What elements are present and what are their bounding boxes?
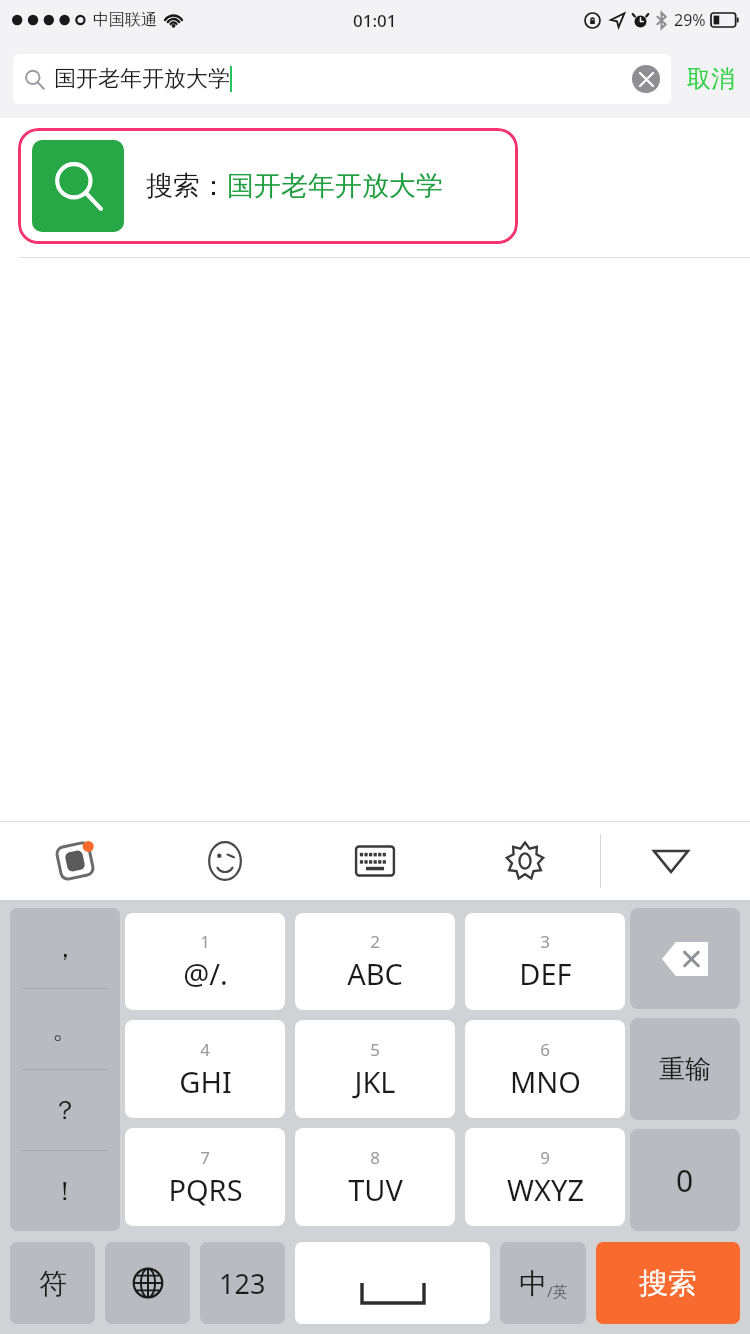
staticText: JKL xyxy=(354,1062,396,1101)
staticText: 取消 xyxy=(687,64,735,94)
button[interactable]: Switch language xyxy=(105,1242,190,1324)
staticText: PQRS xyxy=(168,1170,243,1209)
staticText: 搜索 xyxy=(639,1265,697,1302)
staticText: /英 xyxy=(547,1281,568,1301)
staticText: GHI xyxy=(179,1062,232,1101)
button[interactable]: 7 xyxy=(125,1128,285,1226)
staticText: 国开老年开放大学 xyxy=(54,65,230,93)
button[interactable]: Settings xyxy=(450,822,600,900)
staticText: 符 xyxy=(39,1266,67,1301)
button[interactable]: Clear text xyxy=(632,65,660,93)
button[interactable]: Backspace xyxy=(630,908,740,1009)
button[interactable]: 9 xyxy=(465,1128,625,1226)
staticText: 7 xyxy=(200,1146,210,1169)
staticText: TUV xyxy=(348,1170,403,1209)
button[interactable]: Emoji xyxy=(150,822,300,900)
staticText: 国开老年开放大学 xyxy=(227,169,443,203)
staticText: ， xyxy=(52,932,78,965)
staticText: 中国联通 xyxy=(93,10,157,30)
button[interactable]: 4 xyxy=(125,1020,285,1118)
staticText: @/. xyxy=(183,954,228,993)
button[interactable]: 中 xyxy=(500,1242,586,1324)
button[interactable]: 搜索 xyxy=(596,1242,740,1324)
button[interactable]: 0 xyxy=(630,1129,740,1231)
staticText: WXYZ xyxy=(507,1170,584,1209)
staticText: 01:01 xyxy=(353,9,397,32)
staticText: 。 xyxy=(52,1013,78,1046)
staticText: 29% xyxy=(674,9,706,31)
button[interactable]: 搜索： xyxy=(18,128,518,244)
staticText: 123 xyxy=(219,1265,266,1302)
staticText: 9 xyxy=(540,1146,550,1169)
button[interactable]: 1 xyxy=(125,913,285,1010)
button[interactable]: 123 xyxy=(200,1242,285,1324)
button[interactable]: Hide keyboard xyxy=(644,834,698,888)
staticText: 6 xyxy=(540,1038,550,1061)
button[interactable]: 3 xyxy=(465,913,625,1010)
button[interactable]: 。 xyxy=(10,989,120,1069)
staticText: ？ xyxy=(52,1094,78,1127)
button[interactable]: ？ xyxy=(10,1070,120,1150)
staticText: 1 xyxy=(200,930,210,953)
staticText: 3 xyxy=(540,930,550,953)
staticText: DEF xyxy=(519,954,572,993)
staticText: 4 xyxy=(200,1038,210,1061)
button[interactable]: Space xyxy=(295,1242,490,1324)
button[interactable]: 6 xyxy=(465,1020,625,1118)
staticText: 0 xyxy=(676,1160,694,1201)
button[interactable]: 符 xyxy=(10,1242,95,1324)
staticText: 搜索： xyxy=(146,169,227,203)
staticText: 重输 xyxy=(659,1053,711,1086)
staticText: ABC xyxy=(347,954,403,993)
staticText: ！ xyxy=(52,1175,78,1208)
button[interactable]: 5 xyxy=(295,1020,455,1118)
staticText: 2 xyxy=(370,930,380,953)
button[interactable]: ！ xyxy=(10,1151,120,1231)
staticText: MNO xyxy=(510,1062,581,1101)
staticText: 中 xyxy=(519,1266,547,1301)
button[interactable]: 取消 xyxy=(685,58,737,100)
staticText: 5 xyxy=(370,1038,380,1061)
button[interactable]: 2 xyxy=(295,913,455,1010)
staticText: 8 xyxy=(370,1146,380,1169)
button[interactable]: Sogou input xyxy=(0,822,150,900)
button[interactable]: 8 xyxy=(295,1128,455,1226)
button[interactable]: 国开老年开放大学 xyxy=(13,54,671,104)
button[interactable]: Keyboard layout xyxy=(300,822,450,900)
button[interactable]: 重输 xyxy=(630,1018,740,1120)
button[interactable]: ， xyxy=(10,908,120,988)
